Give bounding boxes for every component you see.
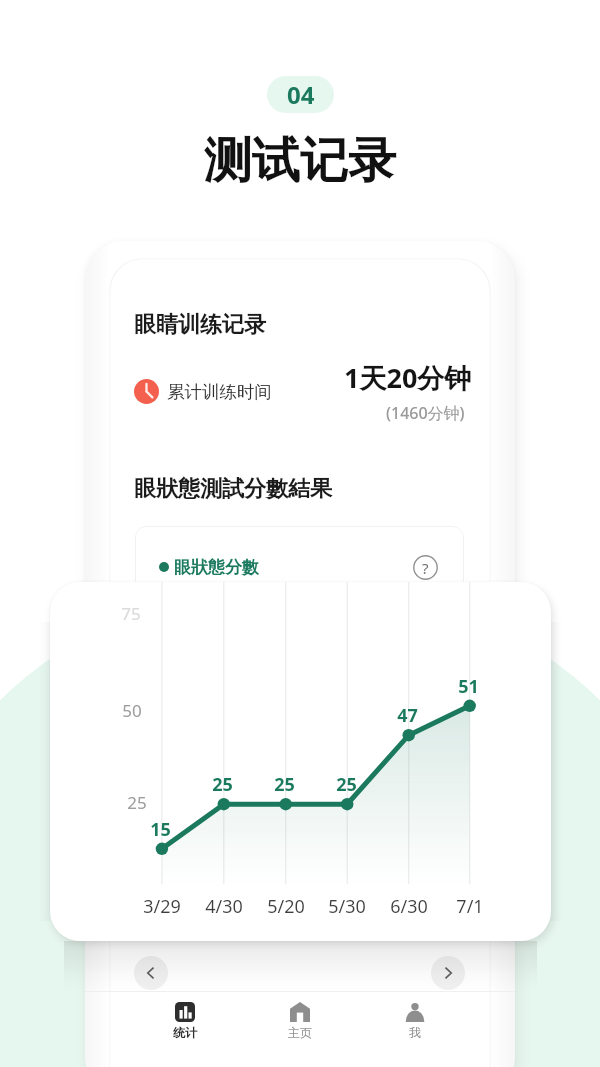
- button[interactable]: 我: [357, 992, 472, 1062]
- staticText: 47: [397, 703, 418, 728]
- button[interactable]: 统计: [128, 992, 242, 1062]
- staticText: 15: [150, 817, 171, 842]
- staticText: 3/29: [143, 894, 181, 919]
- staticText: 7/1: [456, 894, 484, 919]
- staticText: 25: [274, 772, 295, 797]
- staticText: 25: [336, 772, 357, 797]
- button[interactable]: 主页: [242, 992, 357, 1062]
- staticText: 5/30: [328, 894, 366, 919]
- staticText: 主页: [288, 1025, 312, 1040]
- button[interactable]: 04: [267, 76, 334, 113]
- button[interactable]: Help: [413, 555, 438, 580]
- staticText: 25: [127, 791, 147, 814]
- button[interactable]: Next: [431, 956, 465, 990]
- staticText: 1天20分钟: [344, 359, 472, 396]
- staticText: 6/30: [390, 894, 428, 919]
- staticText: 累计训练时间: [167, 381, 272, 403]
- staticText: 眼狀態分數: [174, 557, 259, 578]
- staticText: (1460分钟): [386, 402, 465, 424]
- staticText: 50: [122, 699, 142, 722]
- staticText: 51: [458, 674, 479, 699]
- button[interactable]: Previous: [134, 956, 168, 990]
- staticText: 眼狀態測試分數結果: [134, 475, 332, 503]
- staticText: 4/30: [205, 894, 243, 919]
- staticText: ?: [422, 558, 429, 578]
- staticText: 04: [287, 78, 315, 111]
- staticText: 75: [121, 602, 141, 625]
- staticText: 25: [212, 772, 233, 797]
- staticText: 测试记录: [204, 131, 396, 191]
- staticText: 统计: [173, 1025, 197, 1040]
- staticText: 我: [409, 1025, 421, 1040]
- staticText: 眼睛训练记录: [134, 311, 266, 339]
- staticText: 5/20: [267, 894, 305, 919]
